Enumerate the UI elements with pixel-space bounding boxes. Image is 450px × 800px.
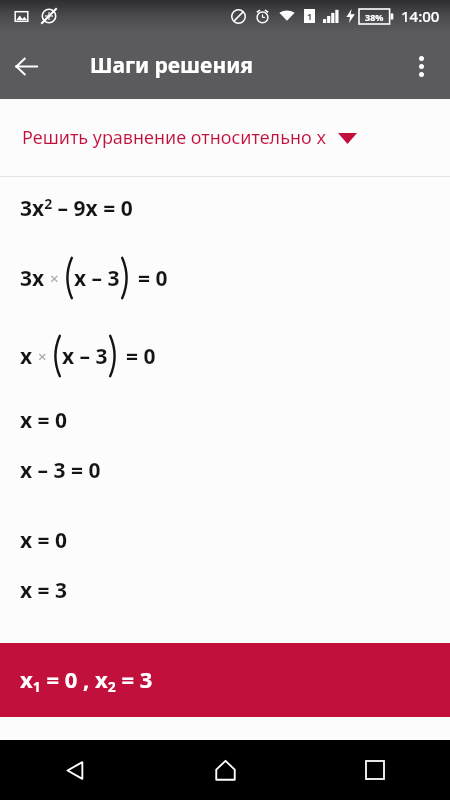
button[interactable]: Back bbox=[0, 740, 150, 800]
button[interactable]: Home bbox=[150, 740, 300, 800]
staticText: 38% bbox=[365, 11, 384, 23]
staticText: x bbox=[20, 342, 33, 371]
staticText: 3x2 – 9x = 0 bbox=[20, 194, 133, 223]
staticText: x = 0 bbox=[20, 526, 68, 555]
staticText: Шаги решения bbox=[90, 51, 254, 80]
button[interactable]: More options bbox=[396, 41, 446, 91]
button[interactable]: Back bbox=[0, 40, 52, 92]
staticText: = 0 bbox=[126, 342, 156, 371]
staticText: Решить уравнение относительно x bbox=[22, 125, 326, 150]
staticText: x – 3 bbox=[74, 264, 120, 293]
button[interactable]: Решить уравнение относительно x bbox=[0, 99, 450, 176]
staticText: x = 0 bbox=[20, 406, 68, 435]
staticText: x1 = 0 , x2 = 3 bbox=[20, 664, 153, 696]
staticText: x = 3 bbox=[20, 576, 68, 605]
staticText: × bbox=[50, 268, 59, 288]
button[interactable]: Recent apps bbox=[300, 740, 450, 800]
staticText: x – 3 bbox=[62, 342, 108, 371]
staticText: x – 3 = 0 bbox=[20, 456, 101, 485]
staticText: = 0 bbox=[138, 264, 168, 293]
staticText: 14:00 bbox=[401, 6, 440, 26]
staticText: × bbox=[38, 346, 47, 366]
staticText: 1 bbox=[307, 10, 313, 22]
button[interactable]: x1 = 0 , x2 = 3 bbox=[0, 643, 450, 717]
staticText: 3x bbox=[20, 264, 45, 293]
